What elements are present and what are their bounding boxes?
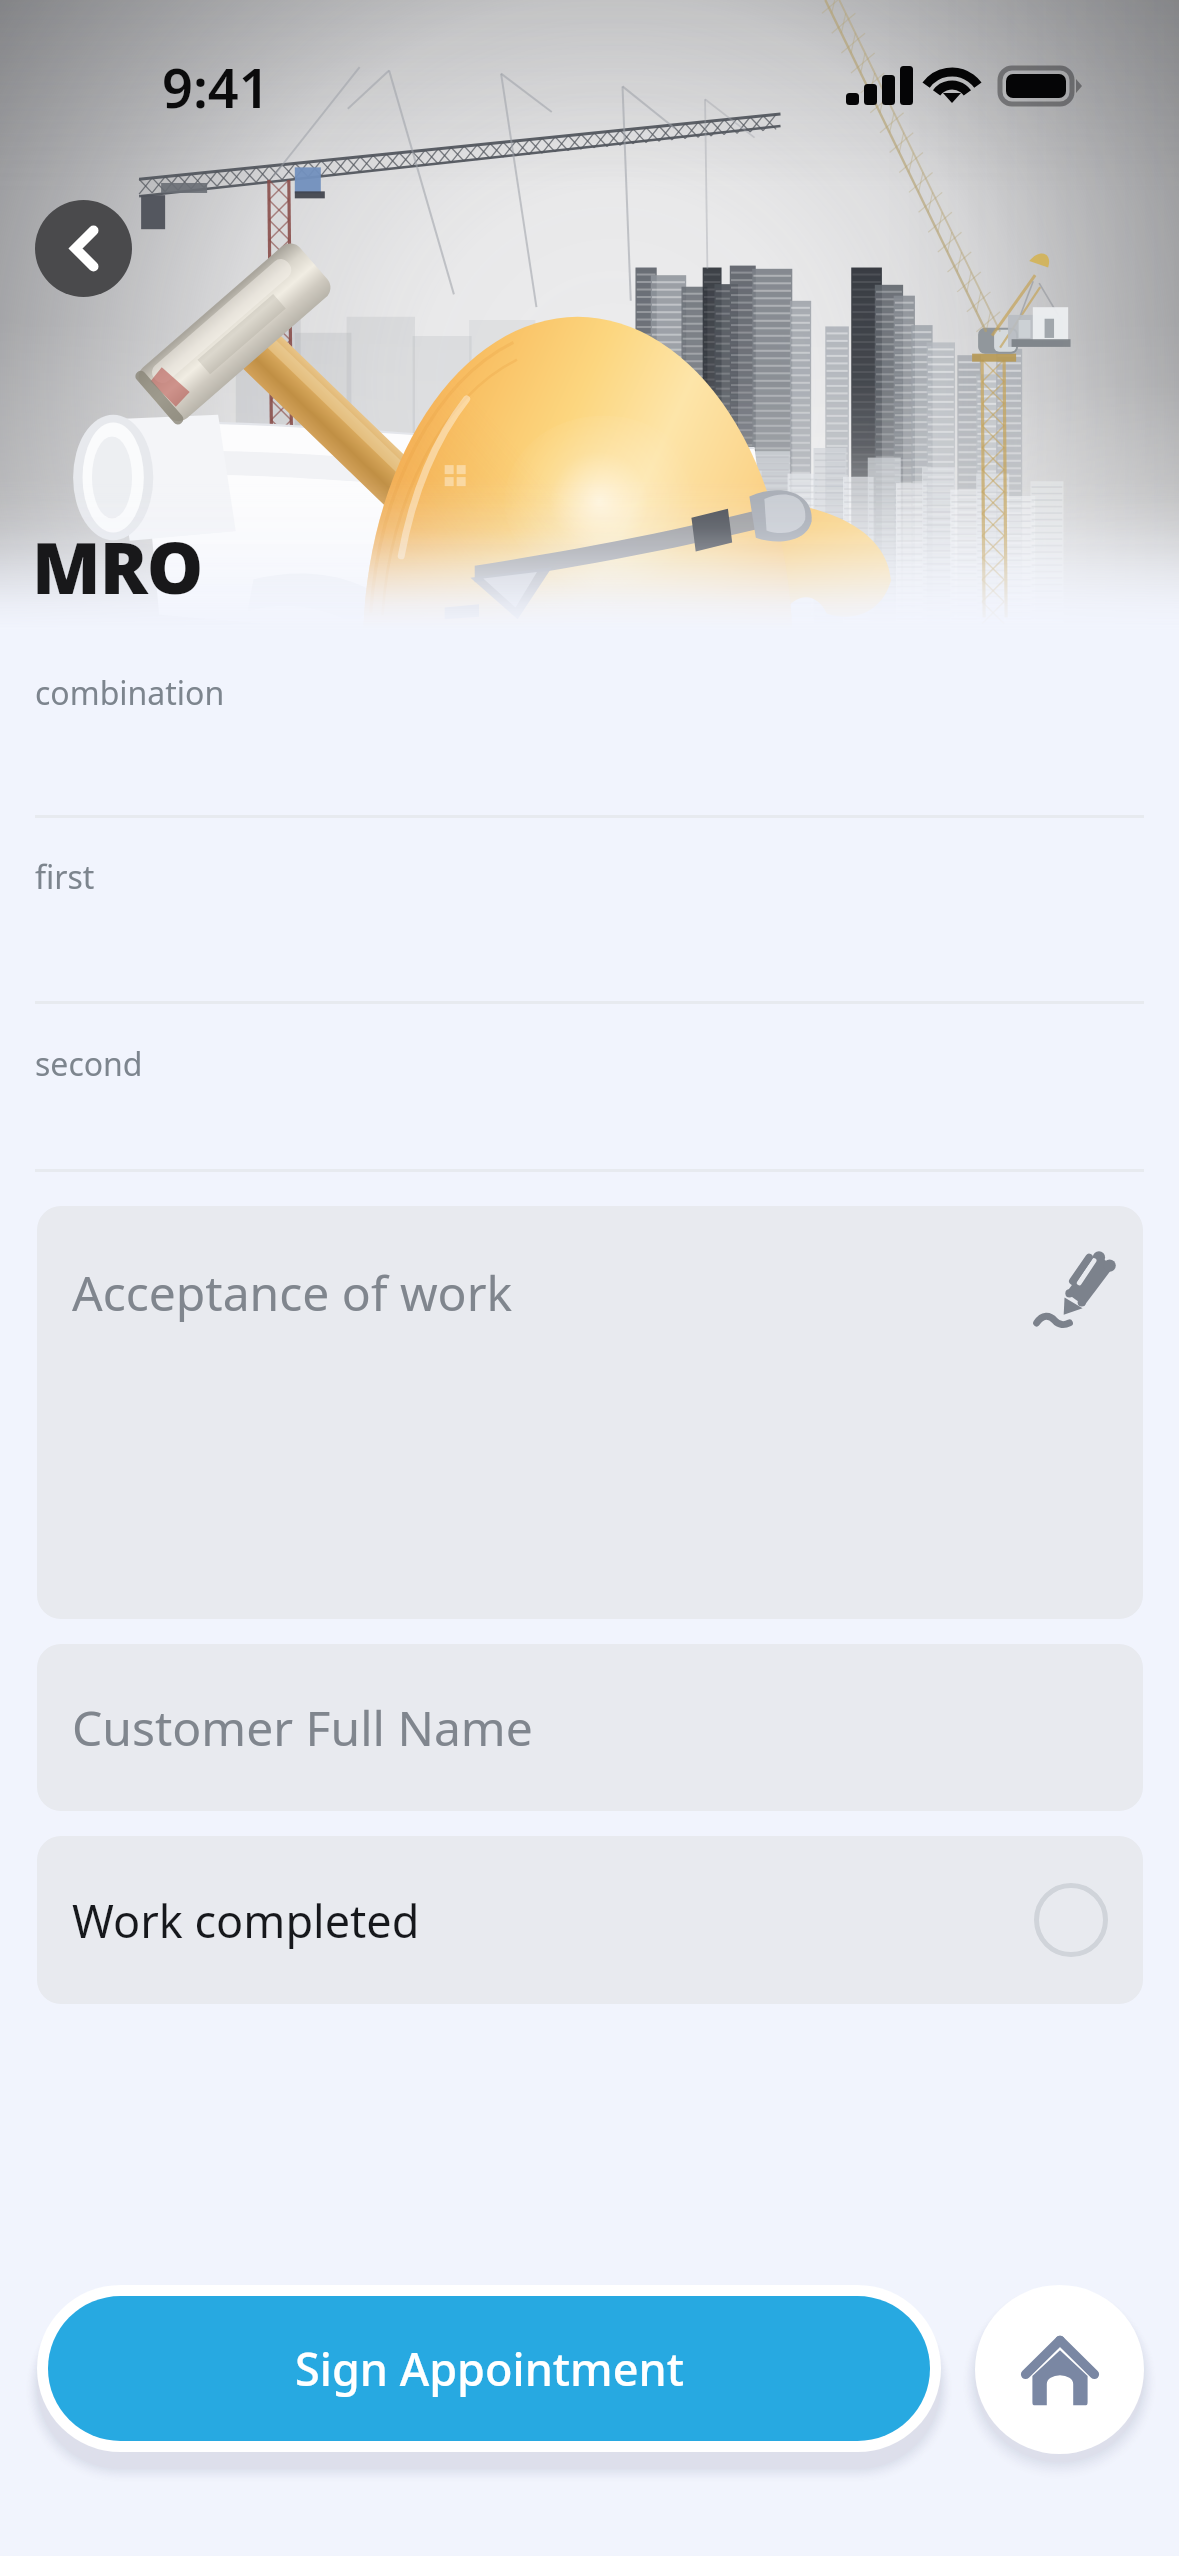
- button[interactable]: Customer Full Name: [37, 1644, 1143, 1811]
- button[interactable]: first: [35, 841, 1144, 1004]
- button[interactable]: Back: [35, 200, 132, 297]
- button[interactable]: Acceptance of work: [37, 1206, 1143, 1619]
- button[interactable]: combination: [35, 657, 1144, 818]
- button[interactable]: Sign Appointment: [48, 2296, 930, 2441]
- staticText: 9:41: [162, 50, 270, 124]
- staticText: Sign Appointment: [295, 2338, 684, 2399]
- staticText: Customer Full Name: [72, 1695, 533, 1760]
- staticText: Acceptance of work: [72, 1260, 513, 1325]
- button[interactable]: second: [35, 1028, 1144, 1172]
- button[interactable]: Home: [975, 2285, 1144, 2454]
- staticText: Work completed: [72, 1890, 420, 1951]
- button[interactable]: Work completed: [37, 1836, 1143, 2004]
- staticText: second: [35, 1042, 143, 1086]
- staticText: MRO: [32, 518, 203, 615]
- staticText: first: [35, 855, 95, 899]
- staticText: combination: [35, 671, 225, 715]
